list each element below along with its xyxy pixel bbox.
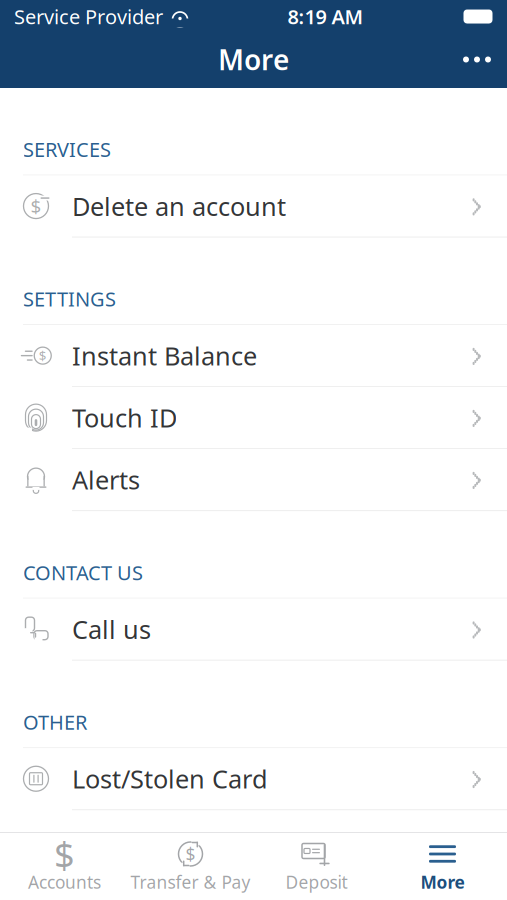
button[interactable]: $ [0,176,507,238]
staticText: Touch ID [72,401,177,434]
button[interactable]: $ [1,835,127,897]
staticText: More [218,41,289,78]
button[interactable]: $ [127,835,253,897]
staticText: CONTACT US [23,559,143,586]
staticText: Delete an account [72,189,286,223]
button[interactable]: Call us [0,599,507,661]
staticText: Deposit [285,870,347,893]
staticText: SERVICES [23,136,111,163]
button[interactable]: Lost/Stolen Card [0,748,507,810]
button[interactable]: $ [0,325,507,387]
button[interactable]: Alerts [0,449,507,511]
staticText: Instant Balance [72,339,257,372]
staticText: Call us [72,612,151,646]
staticText: Lost/Stolen Card [72,762,268,795]
staticText: $ [39,347,47,364]
staticText: $ [30,194,41,218]
staticText: $ [54,830,75,878]
staticText: Alerts [72,463,140,496]
staticText: SETTINGS [23,286,116,312]
staticText: More [420,870,464,893]
button[interactable]: More [379,835,505,897]
staticText: Accounts [28,870,101,893]
button[interactable]: More options [447,37,507,81]
staticText: 8:19 AM [287,3,363,30]
button[interactable]: Touch ID [0,387,507,449]
staticText: Service Provider [14,3,163,30]
staticText: $ [185,842,195,865]
button[interactable]: Deposit [253,835,379,897]
staticText: OTHER [23,709,87,735]
staticText: Transfer & Pay [130,870,250,893]
